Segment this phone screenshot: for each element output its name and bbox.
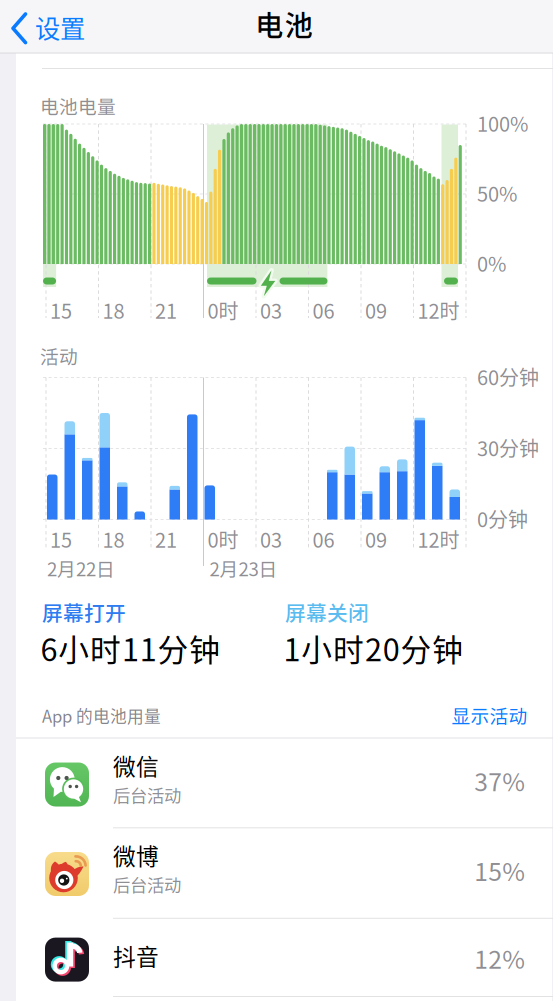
staticText: 屏幕关闭	[285, 597, 369, 627]
staticText: 0分钟	[477, 504, 528, 533]
staticText: 电池电量	[40, 92, 116, 119]
staticText: 12%	[474, 940, 525, 976]
staticText: 12时	[417, 295, 459, 324]
staticText: 2月22日	[47, 554, 115, 581]
staticText: 电池	[255, 4, 313, 44]
staticText: 12时	[417, 524, 459, 553]
staticText: App 的电池用量	[42, 703, 161, 727]
staticText: 18	[102, 524, 124, 553]
staticText: 0时	[207, 524, 238, 553]
staticText: 活动	[40, 342, 78, 369]
staticText: 屏幕打开	[42, 597, 126, 627]
staticText: 后台活动	[113, 872, 181, 897]
staticText: 15	[50, 524, 72, 553]
staticText: 09	[365, 524, 387, 553]
staticText: 微信	[113, 749, 159, 782]
staticText: 15	[50, 295, 72, 324]
staticText: 50%	[477, 178, 517, 207]
staticText: 抖音	[113, 939, 159, 972]
staticText: 09	[365, 295, 387, 324]
staticText: 0时	[207, 295, 238, 324]
staticText: 后台活动	[113, 782, 181, 807]
staticText: 03	[260, 524, 282, 553]
staticText: 6小时11分钟	[40, 626, 220, 670]
staticText: 37%	[474, 762, 525, 798]
staticText: 2月23日	[209, 554, 277, 581]
staticText: 微博	[113, 839, 159, 871]
staticText: 03	[260, 295, 282, 324]
staticText: 15%	[474, 852, 525, 888]
staticText: 设置	[35, 9, 85, 46]
staticText: 100%	[477, 108, 528, 137]
staticText: 30分钟	[477, 433, 539, 462]
staticText: 60分钟	[477, 362, 539, 391]
staticText: 06	[312, 295, 334, 324]
staticText: 18	[102, 295, 124, 324]
staticText: 1小时20分钟	[283, 626, 463, 670]
staticText: 显示活动	[451, 701, 527, 728]
staticText: 21	[155, 524, 177, 553]
staticText: 0%	[477, 248, 506, 277]
staticText: 06	[312, 524, 334, 553]
staticText: 21	[155, 295, 177, 324]
